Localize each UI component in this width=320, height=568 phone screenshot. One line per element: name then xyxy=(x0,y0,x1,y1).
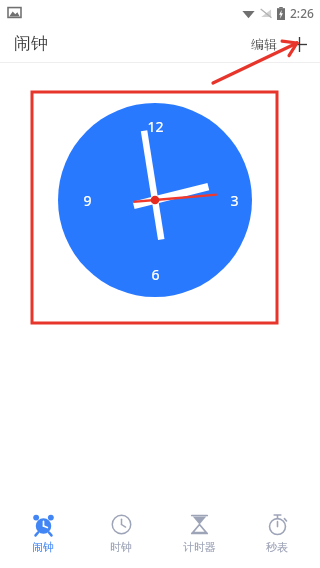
staticText: 闹钟 xyxy=(32,540,54,554)
staticText: 9 xyxy=(83,191,92,210)
staticText: 12 xyxy=(147,117,164,136)
other: Screenshot xyxy=(8,6,21,19)
staticText: 计时器 xyxy=(183,540,216,554)
staticText: 闹钟 xyxy=(14,33,48,54)
staticText: 时钟 xyxy=(110,540,132,554)
staticText: 2:26 xyxy=(290,5,314,21)
button[interactable]: 秒表 xyxy=(242,508,312,560)
staticText: 秒表 xyxy=(266,540,288,554)
staticText: 3 xyxy=(230,191,239,210)
button[interactable]: 计时器 xyxy=(164,508,234,560)
staticText: 6 xyxy=(151,265,160,284)
staticText: 编辑 xyxy=(251,36,277,52)
button[interactable]: 时钟 xyxy=(86,508,156,560)
button[interactable]: 编辑 xyxy=(245,27,283,61)
button[interactable]: 闹钟 xyxy=(8,508,78,560)
button[interactable]: Add alarm xyxy=(283,30,316,59)
